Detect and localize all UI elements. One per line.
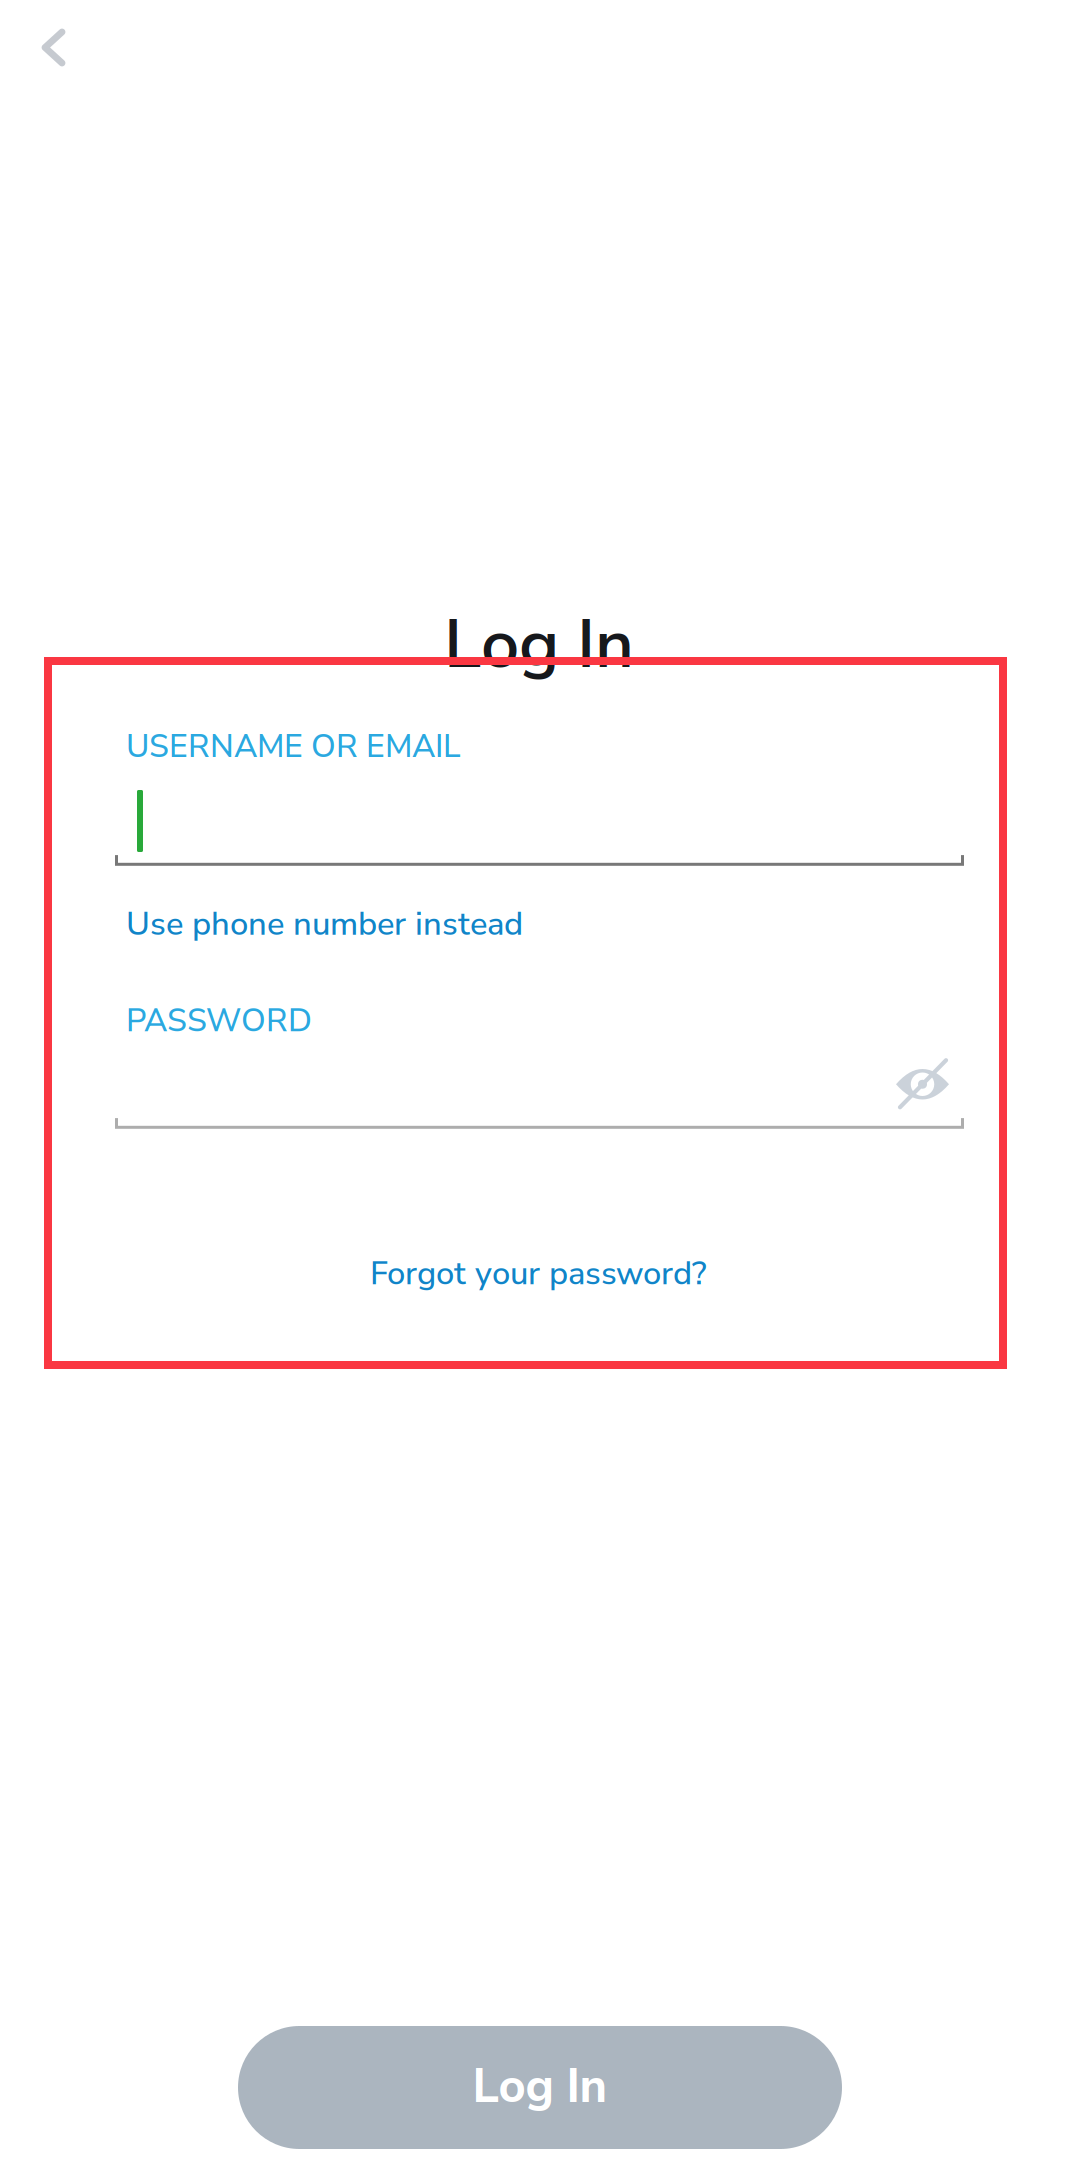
staticText: PASSWORD <box>126 999 312 1042</box>
button[interactable]: Show password <box>881 1048 963 1120</box>
button[interactable]: Forgot your password? <box>364 1241 713 1306</box>
staticText: Log In <box>444 599 634 691</box>
staticText: Use phone number instead <box>126 902 523 946</box>
button[interactable]: Back <box>14 0 106 88</box>
staticText: USERNAME OR EMAIL <box>126 725 461 768</box>
button[interactable]: Use phone number instead <box>124 894 525 954</box>
button[interactable]: Log In <box>238 2026 842 2149</box>
staticText: Forgot your password? <box>370 1251 707 1296</box>
staticText: Log In <box>472 2055 607 2118</box>
